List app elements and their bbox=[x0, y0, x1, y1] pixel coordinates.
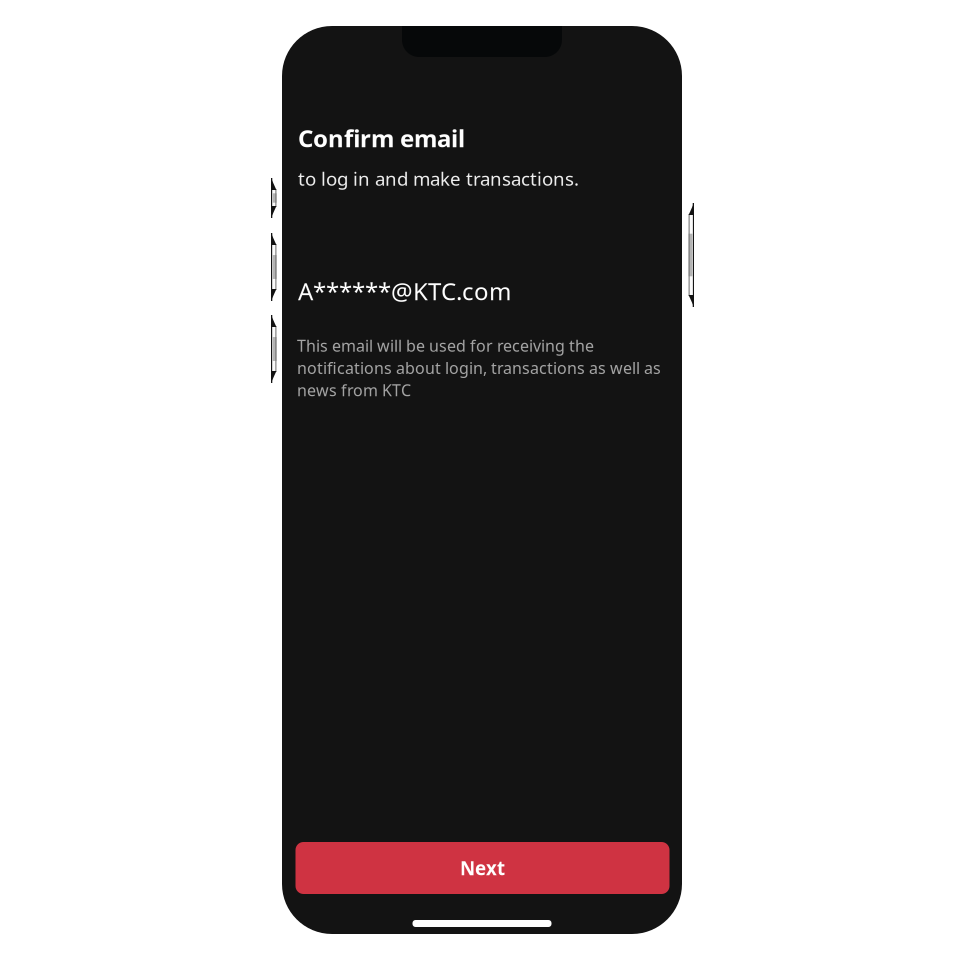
button[interactable]: Next bbox=[295, 842, 669, 894]
staticText: This email will be used for receiving th… bbox=[297, 335, 661, 401]
staticText: to log in and make transactions. bbox=[298, 166, 579, 191]
staticText: Next bbox=[460, 856, 505, 880]
staticText: A******@KTC.com bbox=[298, 275, 511, 307]
staticText: Confirm email bbox=[298, 122, 465, 154]
